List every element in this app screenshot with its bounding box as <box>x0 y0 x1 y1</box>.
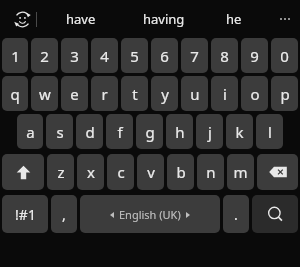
staticText: h <box>175 122 185 142</box>
button[interactable]: g <box>136 114 163 149</box>
button[interactable]: . <box>223 195 249 233</box>
staticText: 0 <box>280 46 289 66</box>
staticText: u <box>190 84 200 104</box>
button[interactable]: r <box>91 76 118 111</box>
button[interactable]: Search <box>252 195 298 233</box>
button[interactable]: f <box>106 114 133 149</box>
button[interactable]: 3 <box>61 38 88 73</box>
staticText: 6 <box>160 46 169 66</box>
staticText: !#1 <box>15 205 36 224</box>
button[interactable]: w <box>31 76 58 111</box>
button[interactable]: !#1 <box>2 195 48 233</box>
staticText: have <box>66 10 96 28</box>
staticText: o <box>250 84 260 104</box>
button[interactable]: Shift <box>2 154 44 190</box>
staticText: n <box>206 162 216 182</box>
button[interactable]: having <box>128 0 200 38</box>
staticText: f <box>117 122 123 142</box>
button[interactable]: j <box>196 114 223 149</box>
staticText: j <box>208 122 212 142</box>
staticText: . <box>234 205 238 224</box>
button[interactable]: i <box>211 76 238 111</box>
staticText: c <box>117 162 125 182</box>
staticText: 8 <box>220 46 229 66</box>
button[interactable]: 2 <box>31 38 58 73</box>
button[interactable]: x <box>77 154 104 190</box>
button[interactable]: 9 <box>241 38 268 73</box>
button[interactable]: 0 <box>271 38 298 73</box>
staticText: k <box>235 122 244 142</box>
staticText: 5 <box>130 46 139 66</box>
staticText: 9 <box>250 46 259 66</box>
staticText: p <box>280 84 290 104</box>
button[interactable]: Space, English (UK) <box>80 195 220 233</box>
button[interactable]: l <box>256 114 283 149</box>
staticText: w <box>39 84 51 104</box>
button[interactable]: a <box>17 114 43 149</box>
button[interactable]: h <box>166 114 193 149</box>
staticText: g <box>145 122 155 142</box>
staticText: t <box>132 84 138 104</box>
staticText: i <box>223 84 227 104</box>
staticText: q <box>10 84 20 104</box>
button[interactable]: v <box>137 154 164 190</box>
button[interactable]: q <box>2 76 28 111</box>
button[interactable]: k <box>226 114 253 149</box>
button[interactable]: s <box>46 114 73 149</box>
button[interactable]: he <box>208 0 260 38</box>
staticText: v <box>147 162 155 182</box>
button[interactable]: u <box>181 76 208 111</box>
staticText: z <box>57 162 65 182</box>
staticText: x <box>87 162 95 182</box>
button[interactable]: More suggestions <box>270 0 300 38</box>
button[interactable]: t <box>121 76 148 111</box>
staticText: a <box>26 122 35 142</box>
button[interactable]: 1 <box>2 38 28 73</box>
staticText: 3 <box>70 46 79 66</box>
staticText: y <box>161 84 169 104</box>
staticText: 4 <box>100 46 109 66</box>
button[interactable]: e <box>61 76 88 111</box>
staticText: 1 <box>11 46 20 66</box>
button[interactable]: m <box>227 154 254 190</box>
staticText: e <box>70 84 79 104</box>
button[interactable]: o <box>241 76 268 111</box>
button[interactable]: y <box>151 76 178 111</box>
staticText: r <box>101 84 108 104</box>
staticText: l <box>268 122 272 142</box>
button[interactable]: have <box>46 0 116 38</box>
staticText: English (UK) <box>119 207 181 222</box>
staticText: 2 <box>40 46 49 66</box>
button[interactable]: d <box>76 114 103 149</box>
button[interactable]: Emoji <box>9 6 35 32</box>
button[interactable]: , <box>51 195 77 233</box>
button[interactable]: p <box>271 76 298 111</box>
staticText: b <box>176 162 186 182</box>
staticText: 7 <box>190 46 199 66</box>
button[interactable]: 7 <box>181 38 208 73</box>
staticText: s <box>56 122 64 142</box>
button[interactable]: 4 <box>91 38 118 73</box>
staticText: having <box>143 10 185 28</box>
button[interactable]: b <box>167 154 194 190</box>
button[interactable]: 8 <box>211 38 238 73</box>
staticText: , <box>62 205 66 224</box>
button[interactable]: z <box>47 154 74 190</box>
button[interactable]: 5 <box>121 38 148 73</box>
button[interactable]: Backspace <box>257 154 298 190</box>
button[interactable]: n <box>197 154 224 190</box>
staticText: he <box>226 10 242 28</box>
button[interactable]: c <box>107 154 134 190</box>
staticText: m <box>233 162 248 182</box>
staticText: d <box>85 122 95 142</box>
button[interactable]: 6 <box>151 38 178 73</box>
